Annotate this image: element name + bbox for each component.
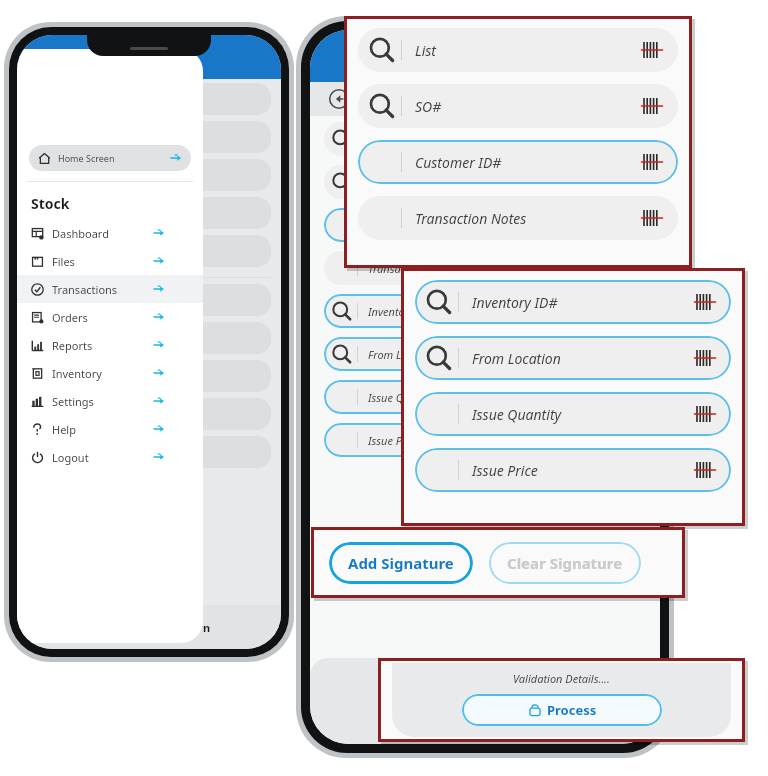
button[interactable]: SO# bbox=[324, 165, 646, 199]
staticText: Transaction Notes bbox=[415, 209, 527, 228]
staticText: n bbox=[203, 620, 211, 635]
button[interactable] bbox=[167, 235, 271, 267]
button[interactable]: Files bbox=[17, 247, 203, 275]
staticText: Issue Quantity bbox=[472, 405, 562, 424]
staticText: Process bbox=[547, 701, 597, 719]
button[interactable]: Settings bbox=[17, 387, 203, 415]
button[interactable]: Logout bbox=[17, 443, 203, 471]
button[interactable] bbox=[167, 159, 271, 191]
staticText: List bbox=[368, 132, 385, 147]
button[interactable]: Transactions bbox=[17, 275, 203, 303]
staticText: Customer ID# bbox=[368, 218, 436, 233]
staticText: Files bbox=[52, 254, 75, 269]
staticText: Transactions bbox=[52, 282, 118, 297]
button[interactable]: From Location bbox=[324, 337, 646, 371]
staticText: From Location bbox=[472, 349, 561, 368]
staticText: Stock bbox=[31, 194, 70, 213]
staticText: Inventory ID# bbox=[472, 293, 558, 312]
button[interactable]: Dashboard bbox=[17, 219, 203, 247]
staticText: From Location bbox=[368, 347, 438, 362]
button[interactable]: Reports bbox=[17, 331, 203, 359]
staticText: List bbox=[415, 41, 436, 60]
staticText: Transaction Notes bbox=[368, 261, 456, 276]
staticText: Validation Details.... bbox=[513, 671, 610, 686]
button[interactable]: Issue Quantity bbox=[324, 380, 646, 414]
button[interactable]: Inventory ID# bbox=[415, 280, 731, 324]
button[interactable]: Home Screen bbox=[29, 145, 191, 171]
staticText: Logout bbox=[52, 450, 89, 465]
button[interactable]: Transaction Notes bbox=[324, 251, 646, 285]
button[interactable] bbox=[167, 284, 271, 316]
staticText: Issue Quantity bbox=[368, 390, 438, 405]
button[interactable] bbox=[167, 360, 271, 392]
button[interactable]: Customer ID# bbox=[324, 208, 646, 242]
button[interactable]: Process bbox=[462, 694, 662, 726]
button[interactable]: List bbox=[324, 122, 646, 156]
button[interactable]: Orders bbox=[17, 303, 203, 331]
staticText: Add Signature bbox=[348, 553, 454, 573]
staticText: Orders bbox=[52, 310, 88, 325]
button[interactable]: Clear Signature bbox=[489, 542, 641, 584]
staticText: SO# bbox=[415, 97, 442, 116]
staticText: SO# bbox=[368, 175, 389, 190]
staticText: Settings bbox=[52, 394, 94, 409]
button[interactable]: Issue Price bbox=[415, 448, 731, 492]
staticText: Inventory bbox=[52, 366, 102, 381]
staticText: Help bbox=[52, 422, 76, 437]
button[interactable]: Issue Price bbox=[324, 423, 646, 457]
button[interactable] bbox=[167, 121, 271, 153]
staticText: Home Screen bbox=[58, 152, 115, 164]
staticText: Reports bbox=[52, 338, 93, 353]
staticText: Dashboard bbox=[52, 226, 109, 241]
button[interactable] bbox=[167, 197, 271, 229]
staticText: Issue Price bbox=[472, 461, 538, 480]
staticText: Customer ID# bbox=[415, 153, 502, 172]
staticText: Inventory ID# bbox=[368, 304, 436, 319]
button[interactable]: Customer ID# bbox=[358, 140, 678, 184]
staticText: Clear Signature bbox=[507, 553, 623, 573]
button[interactable] bbox=[167, 398, 271, 430]
button[interactable]: Inventory bbox=[17, 359, 203, 387]
button[interactable]: List bbox=[358, 28, 678, 72]
button[interactable] bbox=[167, 436, 271, 468]
button[interactable]: Issue Quantity bbox=[415, 392, 731, 436]
button[interactable]: Inventory ID# bbox=[324, 294, 646, 328]
button[interactable]: SO# bbox=[358, 84, 678, 128]
button[interactable] bbox=[167, 83, 271, 115]
staticText: Issue Price bbox=[368, 433, 420, 448]
button[interactable]: Add Signature bbox=[329, 542, 473, 584]
button[interactable]: Help bbox=[17, 415, 203, 443]
button[interactable] bbox=[167, 322, 271, 354]
button[interactable]: Transaction Notes bbox=[358, 196, 678, 240]
button[interactable]: From Location bbox=[415, 336, 731, 380]
button[interactable]: Back bbox=[328, 88, 350, 110]
